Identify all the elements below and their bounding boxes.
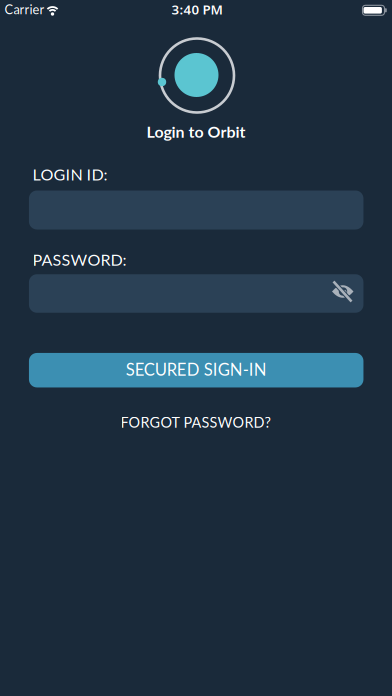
- staticText: Login to Orbit: [146, 122, 245, 141]
- staticText: FORGOT PASSWORD?: [120, 414, 270, 431]
- staticText: Carrier: [4, 2, 44, 17]
- secureTextField[interactable]: [29, 278, 363, 308]
- staticText: SECURED SIGN-IN: [126, 359, 267, 379]
- button[interactable]: SECURED SIGN-IN: [29, 353, 363, 387]
- staticText: LOGIN ID:: [32, 164, 107, 184]
- staticText: 3:40 PM: [171, 0, 222, 18]
- staticText: PASSWORD:: [32, 250, 126, 269]
- button[interactable]: Show password: [325, 274, 359, 308]
- button[interactable]: FORGOT PASSWORD?: [120, 414, 270, 431]
